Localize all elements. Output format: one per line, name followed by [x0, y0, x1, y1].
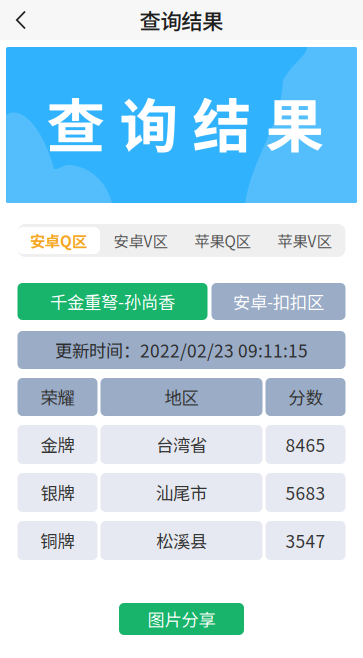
staticText: 铜牌 [40, 528, 74, 553]
staticText: 台湾省 [156, 432, 207, 457]
button[interactable]: 千金重弩-孙尚香 [17, 283, 207, 320]
staticText: 苹果Q区 [194, 229, 250, 252]
staticText: 图片分享 [147, 606, 215, 632]
staticText: 安卓V区 [113, 229, 167, 252]
button[interactable]: 苹果Q区 [181, 224, 263, 257]
button[interactable]: Back [0, 0, 42, 40]
staticText: 松溪县 [156, 528, 207, 553]
staticText: 分数 [288, 384, 322, 410]
staticText: 8465 [285, 432, 325, 457]
staticText: 银牌 [40, 480, 74, 505]
staticText: 查询结果 [46, 79, 324, 164]
button[interactable]: 安卓-扣扣区 [211, 283, 345, 320]
button[interactable]: 安卓Q区 [17, 224, 99, 257]
staticText: 千金重弩-孙尚香 [50, 289, 175, 314]
staticText: 地区 [164, 384, 198, 410]
staticText: 汕尾市 [156, 480, 207, 505]
button[interactable]: 苹果V区 [263, 224, 345, 257]
staticText: 查询结果 [139, 5, 223, 35]
button[interactable]: 图片分享 [119, 603, 244, 635]
button[interactable]: 安卓V区 [99, 224, 181, 257]
staticText: 安卓-扣扣区 [233, 289, 324, 314]
staticText: 安卓Q区 [30, 229, 87, 252]
staticText: 3547 [285, 528, 325, 553]
staticText: 5683 [285, 480, 325, 505]
staticText: 更新时间：2022/02/23 09:11:15 [55, 337, 308, 363]
staticText: 金牌 [40, 432, 74, 457]
staticText: 荣耀 [40, 384, 74, 410]
staticText: 苹果V区 [277, 229, 331, 252]
